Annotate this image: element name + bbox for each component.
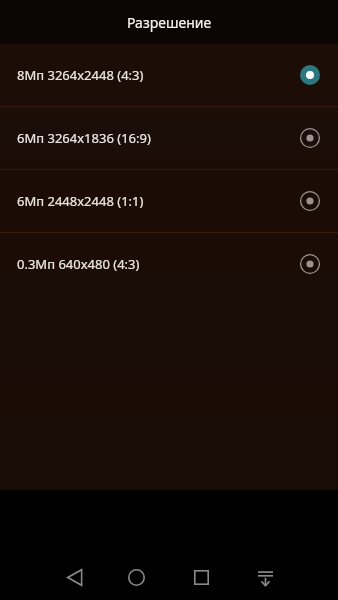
button[interactable]: Hide navigation bar <box>247 559 283 595</box>
staticText: 8Мп 3264x2448 (4:3) <box>17 66 295 84</box>
button[interactable]: Home <box>118 559 154 595</box>
button[interactable]: Back <box>56 559 92 595</box>
button[interactable]: 6Мп 3264x1836 (16:9) <box>0 107 338 169</box>
staticText: 6Мп 3264x1836 (16:9) <box>17 129 295 147</box>
staticText: Разрешение <box>127 13 212 32</box>
button[interactable]: 8Мп 3264x2448 (4:3) <box>0 44 338 106</box>
staticText: 6Мп 2448x2448 (1:1) <box>17 192 295 210</box>
other: Not selected <box>295 249 325 279</box>
button[interactable]: 6Мп 2448x2448 (1:1) <box>0 170 338 232</box>
other: Not selected <box>295 123 325 153</box>
button[interactable]: 0.3Мп 640x480 (4:3) <box>0 233 338 295</box>
button[interactable]: Recent apps <box>183 559 219 595</box>
staticText: 0.3Мп 640x480 (4:3) <box>17 255 295 273</box>
other: Selected <box>295 60 325 90</box>
other: Not selected <box>295 186 325 216</box>
